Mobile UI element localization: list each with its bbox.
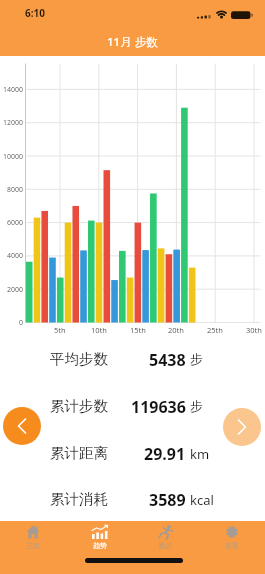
staticText: 10000 (2, 152, 23, 162)
staticText: 10th (91, 325, 107, 335)
staticText: 累计距离 (50, 444, 108, 462)
staticText: kcal (190, 491, 214, 509)
staticText: 主页 (26, 541, 40, 550)
staticText: 跑步 (159, 541, 173, 550)
staticText: 8000 (6, 185, 23, 195)
staticText: 6000 (6, 218, 23, 228)
staticText: 3589 (149, 489, 186, 511)
staticText: 步 (190, 351, 203, 367)
staticText: 25th (207, 325, 223, 335)
staticText: km (190, 445, 210, 463)
staticText: 设置 (225, 541, 239, 550)
staticText: 20th (168, 325, 184, 335)
staticText: 累计步数 (50, 397, 108, 415)
staticText: 趋势 (93, 541, 107, 550)
staticText: 步 (190, 398, 203, 414)
staticText: 5th (54, 325, 66, 335)
button[interactable] (223, 408, 261, 446)
staticText: 11月 步数 (107, 34, 158, 50)
staticText: 2000 (6, 285, 23, 295)
staticText: 6:10 (25, 6, 45, 20)
staticText: 4000 (6, 251, 23, 261)
button[interactable]: 趋势 (67, 521, 133, 574)
staticText: 0 (18, 318, 23, 328)
staticText: 累计消耗 (50, 490, 108, 508)
staticText: 29.91 (144, 443, 186, 465)
button[interactable] (3, 407, 41, 445)
button[interactable]: 设置 (199, 521, 265, 574)
staticText: 14000 (2, 85, 23, 95)
button[interactable]: 跑步 (133, 521, 199, 574)
staticText: 12000 (2, 118, 23, 128)
staticText: 30th (246, 325, 262, 335)
staticText: 15th (130, 325, 146, 335)
staticText: 119636 (131, 396, 186, 418)
staticText: 平均步数 (50, 350, 108, 368)
button[interactable]: 主页 (0, 521, 66, 574)
staticText: 5438 (149, 349, 186, 371)
